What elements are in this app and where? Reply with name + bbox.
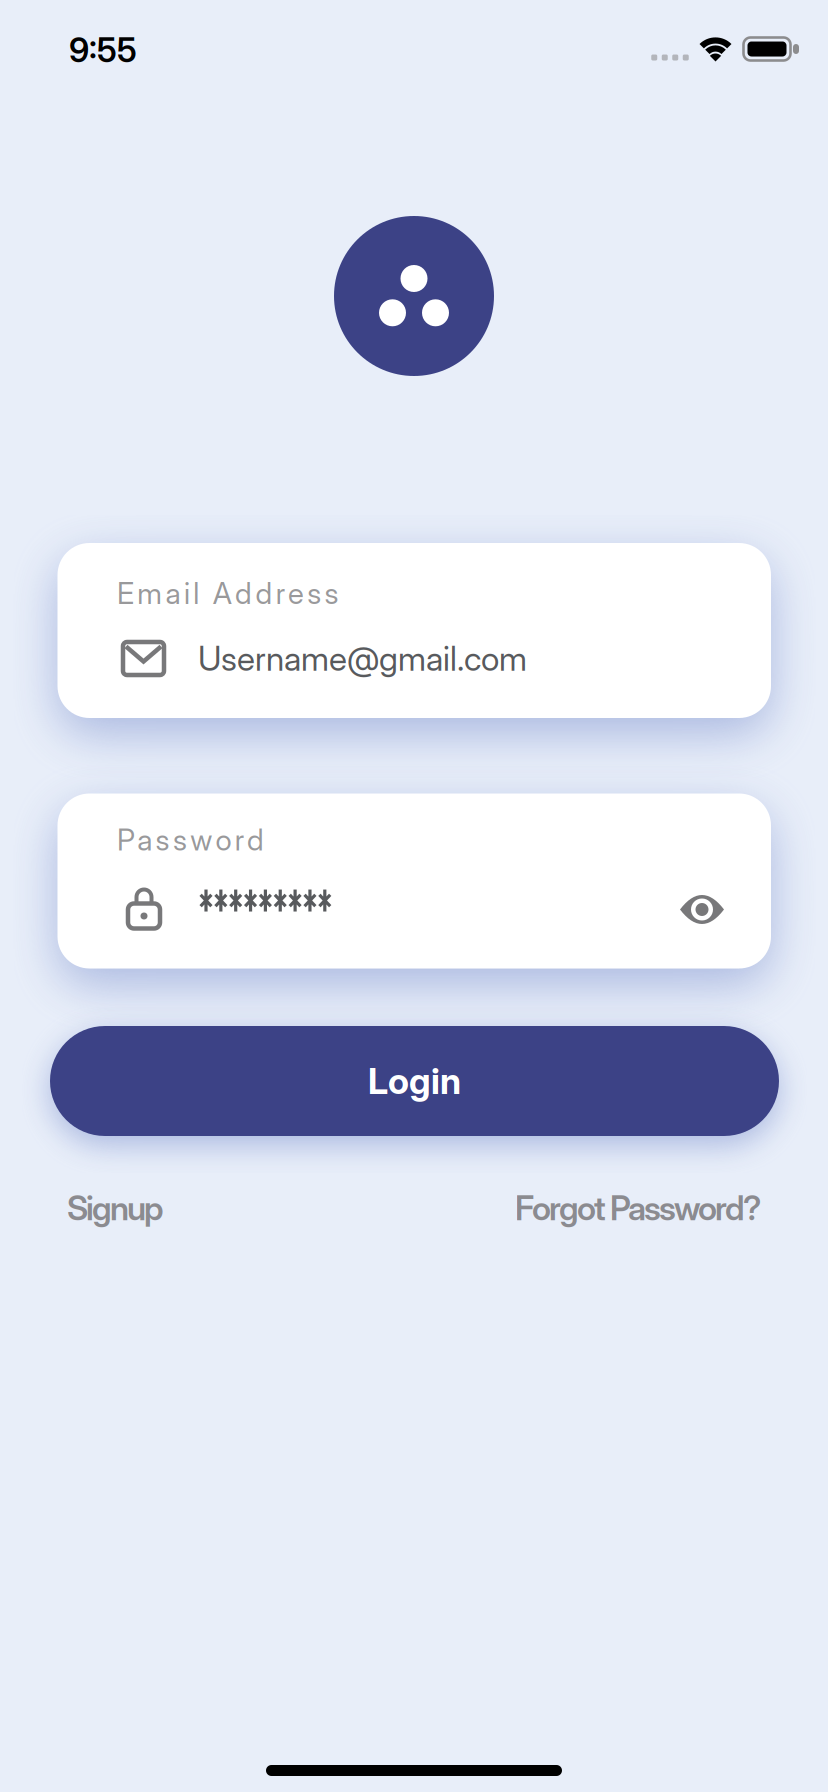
button[interactable]: Signup	[67, 1188, 164, 1228]
staticText: Email Address	[117, 576, 339, 611]
staticText: Forgot Password?	[515, 1188, 761, 1228]
staticText: Signup	[67, 1188, 164, 1228]
staticText: Username@gmail.com	[198, 639, 527, 678]
button[interactable]: Forgot Password?	[515, 1188, 761, 1228]
button[interactable]	[680, 894, 724, 924]
button[interactable]: Password	[57, 793, 771, 968]
staticText: Password	[117, 822, 264, 857]
staticText: 9:55	[69, 30, 137, 70]
button[interactable]: Login	[50, 1026, 779, 1136]
staticText: Login	[368, 1060, 461, 1102]
button[interactable]: Email Address	[57, 543, 771, 718]
